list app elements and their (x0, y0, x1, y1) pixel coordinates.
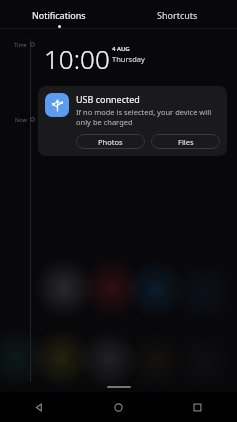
button[interactable]: Photos (76, 134, 145, 149)
staticText: Shortcuts (157, 9, 198, 21)
button[interactable]: Recents (158, 392, 237, 422)
button[interactable]: Home (79, 392, 158, 422)
staticText: Now (15, 116, 27, 123)
staticText: If no mode is selected, your device will… (76, 107, 220, 127)
staticText: Photos (98, 137, 123, 147)
button[interactable]: Files (151, 134, 220, 149)
staticText: Time (14, 41, 27, 48)
staticText: Files (178, 137, 194, 147)
staticText: 4 AUG (112, 45, 130, 53)
staticText: Thursday (112, 54, 145, 64)
button[interactable]: USB connected (38, 86, 227, 156)
staticText: USB connected (76, 93, 140, 105)
staticText: 10:00 (44, 41, 110, 76)
button[interactable]: Back (0, 392, 79, 422)
button[interactable]: Shortcuts (118, 0, 237, 28)
button[interactable]: Notifications (0, 0, 118, 28)
staticText: Notifications (32, 9, 86, 21)
